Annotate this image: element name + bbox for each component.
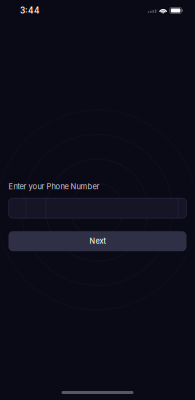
staticText: Enter your Phone Number [8, 182, 99, 191]
button[interactable]: Phone number [8, 198, 186, 218]
button[interactable]: Next [8, 231, 186, 251]
staticText: 3:44 [20, 5, 40, 15]
staticText: Next [89, 237, 105, 246]
